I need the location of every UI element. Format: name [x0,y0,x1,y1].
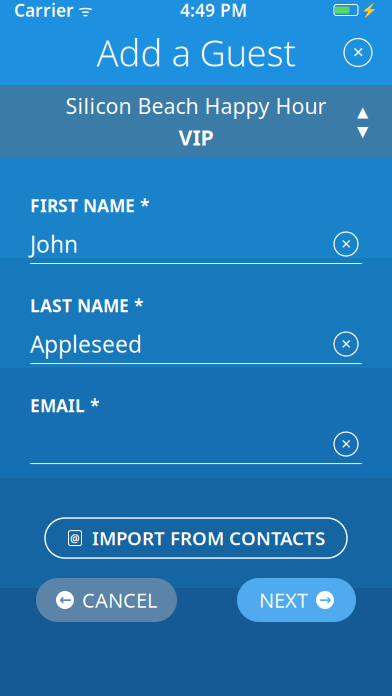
button[interactable]: Clear LAST NAME * [330,328,362,360]
button[interactable]: Clear EMAIL * [330,428,362,460]
staticText: Silicon Beach Happy Hour [65,92,326,120]
button[interactable]: ← [36,578,177,622]
staticText: NEXT [259,587,308,613]
staticText: → [319,592,331,608]
button[interactable]: Clear FIRST NAME * [330,228,362,260]
staticText: @ [70,531,80,545]
staticText: ✕ [340,236,351,252]
staticText: ▼ [357,123,368,140]
button[interactable]: NEXT [237,578,356,622]
staticText: VIP [178,123,213,151]
staticText: ᯤ [74,0,93,21]
staticText: ⚡ [361,2,378,18]
staticText: LAST NAME * [30,294,143,317]
staticText: EMAIL * [30,394,99,417]
staticText: ▲ [357,103,368,120]
staticText: FIRST NAME * [30,194,149,217]
staticText: 4:49 PM [180,0,247,21]
staticText: CANCEL [82,587,157,613]
staticText: ✕ [352,44,364,61]
staticText: ← [59,592,71,608]
staticText: IMPORT FROM CONTACTS [92,526,325,550]
staticText: Carrier [14,0,74,21]
staticText: Appleseed [30,329,142,359]
staticText: ✕ [340,336,351,352]
button[interactable]: @ [45,518,347,558]
button[interactable]: Silicon Beach Happy Hour [0,85,392,158]
button[interactable]: Close [336,30,380,74]
staticText: Add a Guest [96,29,295,76]
staticText: John [30,229,78,259]
staticText: ✕ [340,436,351,452]
